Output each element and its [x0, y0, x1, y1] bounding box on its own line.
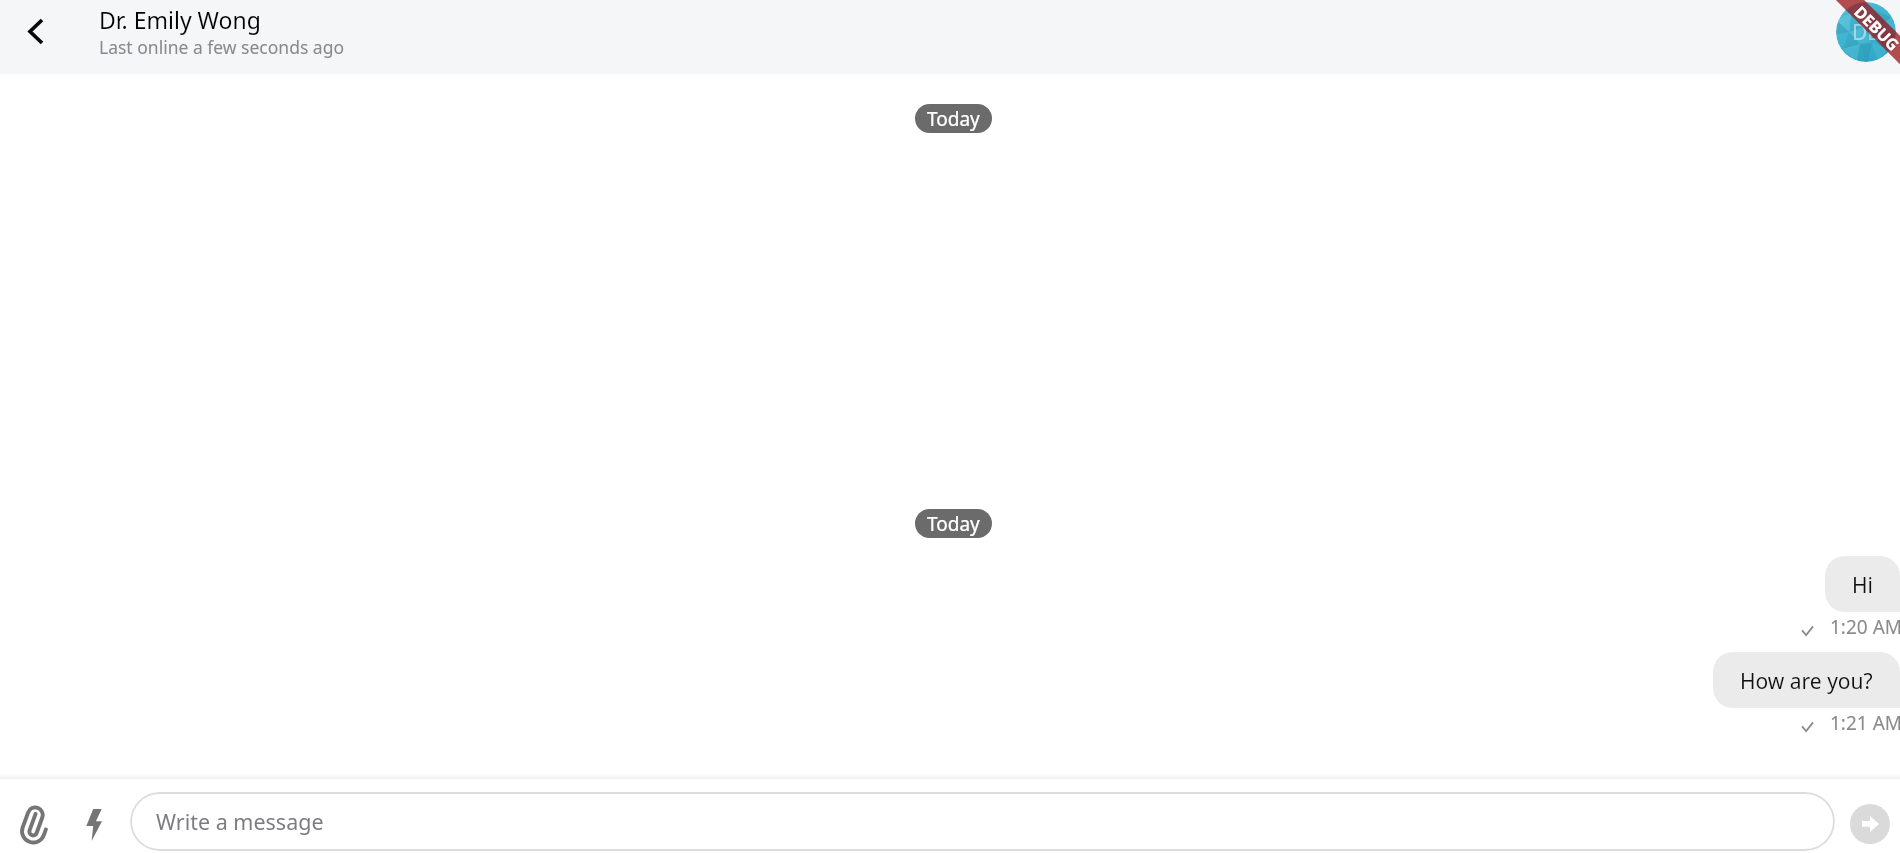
staticText: Dr. Emily Wong: [99, 4, 261, 35]
button[interactable]: Profile photo: [1836, 2, 1896, 62]
button[interactable]: Back: [0, 0, 71, 63]
button[interactable]: Today: [915, 509, 992, 538]
staticText: How are you?: [1740, 667, 1873, 696]
staticText: Hi: [1852, 571, 1873, 600]
button[interactable]: Attach file: [4, 794, 68, 853]
button[interactable]: Send: [1850, 804, 1890, 844]
staticText: 1:21 AM: [1830, 710, 1900, 736]
staticText: Today: [927, 106, 980, 132]
button[interactable]: Hi: [1825, 556, 1900, 612]
staticText: Write a message: [156, 807, 324, 836]
button[interactable]: How are you?: [1713, 652, 1900, 708]
staticText: DE: [1852, 18, 1880, 47]
staticText: Last online a few seconds ago: [99, 35, 345, 59]
staticText: Today: [927, 511, 980, 537]
button[interactable]: Write a message: [130, 792, 1835, 851]
button[interactable]: Today: [915, 104, 992, 133]
staticText: DEBUG: [1851, 1, 1900, 54]
staticText: 1:20 AM: [1830, 614, 1900, 640]
button[interactable]: Quick replies: [71, 802, 116, 847]
